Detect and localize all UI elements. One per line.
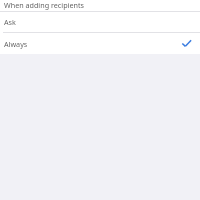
- staticText: Ask: [4, 17, 193, 27]
- staticText: When adding recipients: [4, 0, 84, 10]
- button[interactable]: Always: [0, 33, 200, 54]
- other: Selected: [180, 37, 193, 50]
- staticText: Always: [4, 39, 180, 49]
- button[interactable]: Ask: [0, 12, 200, 32]
